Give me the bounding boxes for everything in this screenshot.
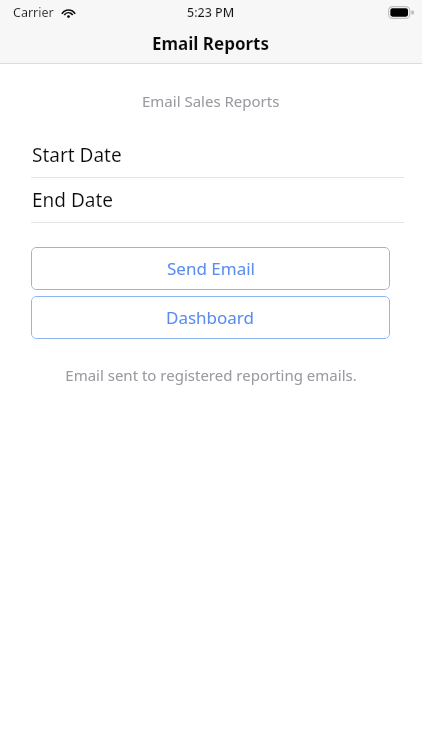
other: Battery full <box>388 6 414 19</box>
staticText: Dashboard <box>166 306 255 329</box>
staticText: Start Date <box>32 142 122 168</box>
button[interactable]: Send Email <box>31 247 390 290</box>
staticText: Email Sales Reports <box>142 91 280 111</box>
staticText: End Date <box>32 187 114 213</box>
other: Wi-Fi signal <box>61 7 76 18</box>
staticText: Carrier <box>13 4 54 21</box>
button[interactable]: End Date <box>0 178 422 222</box>
staticText: Send Email <box>167 257 255 280</box>
button[interactable]: Start Date <box>0 133 422 177</box>
staticText: Email sent to registered reporting email… <box>65 365 357 385</box>
staticText: 5:23 PM <box>187 4 235 21</box>
staticText: Email Reports <box>152 32 270 55</box>
button[interactable]: Dashboard <box>31 296 390 339</box>
